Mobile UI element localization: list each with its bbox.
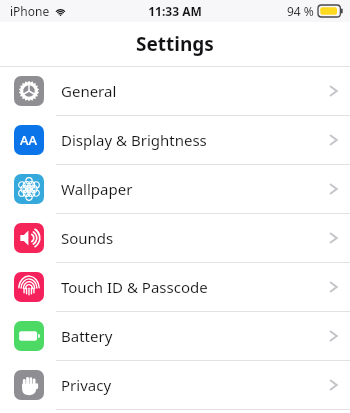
- staticText: Sounds: [61, 228, 329, 248]
- button[interactable]: AA: [0, 116, 350, 164]
- button[interactable]: Touch ID & Passcode: [0, 263, 350, 311]
- staticText: AA: [20, 131, 38, 149]
- button[interactable]: Battery: [0, 312, 350, 360]
- staticText: Settings: [136, 31, 214, 57]
- staticText: Battery: [61, 326, 329, 346]
- staticText: General: [61, 81, 329, 101]
- staticText: Touch ID & Passcode: [61, 277, 329, 297]
- staticText: 94 %: [287, 3, 314, 19]
- button[interactable]: Wallpaper: [0, 165, 350, 213]
- button[interactable]: Privacy: [0, 361, 350, 409]
- button[interactable]: Sounds: [0, 214, 350, 262]
- staticText: Privacy: [61, 375, 329, 395]
- button[interactable]: General: [0, 67, 350, 115]
- staticText: 11:33 AM: [148, 3, 202, 19]
- staticText: iPhone: [10, 3, 50, 19]
- staticText: Wallpaper: [61, 179, 329, 199]
- staticText: Display & Brightness: [61, 130, 329, 150]
